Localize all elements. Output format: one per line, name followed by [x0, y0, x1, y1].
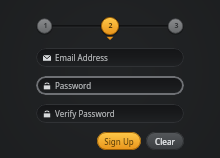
button[interactable]: Email Address	[36, 48, 184, 67]
button[interactable]: 3	[168, 18, 184, 34]
staticText: 3	[174, 21, 179, 31]
button[interactable]: 1	[37, 18, 53, 34]
staticText: Sign Up	[104, 136, 134, 147]
staticText: Clear	[155, 136, 175, 147]
staticText: 2	[108, 21, 113, 31]
staticText: 1	[43, 21, 48, 31]
button[interactable]: Clear	[146, 132, 184, 150]
staticText: Password	[55, 80, 92, 91]
button[interactable]: 2	[102, 18, 118, 34]
button[interactable]: Verify Password	[36, 104, 184, 123]
button[interactable]: Password	[36, 76, 184, 95]
button[interactable]: Sign Up	[97, 132, 141, 150]
staticText: Email Address	[55, 52, 108, 63]
staticText: Verify Password	[55, 108, 115, 119]
